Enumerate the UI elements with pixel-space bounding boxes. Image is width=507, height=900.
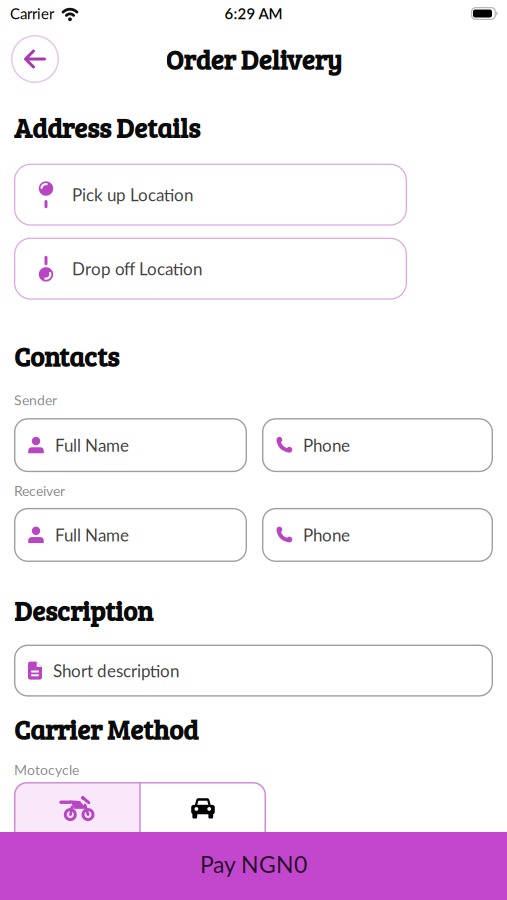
staticText: Phone xyxy=(303,435,350,455)
staticText: Full Name xyxy=(55,525,129,545)
button[interactable]: Drop off Location xyxy=(14,238,407,300)
staticText: Carrier xyxy=(10,4,54,22)
staticText: Address Details xyxy=(14,109,200,146)
staticText: Sender xyxy=(14,391,57,408)
staticText: Drop off Location xyxy=(72,258,202,279)
button[interactable]: Full Name xyxy=(14,508,247,562)
button[interactable]: Car xyxy=(140,782,266,844)
staticText: Pick up Location xyxy=(72,184,193,205)
staticText: Short description xyxy=(53,660,179,681)
staticText: Carrier Method xyxy=(14,711,198,747)
button[interactable]: Phone xyxy=(262,508,493,562)
staticText: Receiver xyxy=(14,482,65,499)
staticText: Phone xyxy=(303,525,350,545)
button[interactable]: Phone xyxy=(262,418,493,472)
staticText: 6:29 AM xyxy=(224,4,282,22)
staticText: Full Name xyxy=(55,435,129,455)
staticText: Description xyxy=(14,592,153,629)
button[interactable]: Short description xyxy=(14,645,493,697)
button[interactable]: Full Name xyxy=(14,418,247,472)
staticText: Pay NGN0 xyxy=(200,850,307,878)
staticText: Order Delivery xyxy=(165,41,341,77)
staticText: Contacts xyxy=(14,338,119,374)
button[interactable]: Back xyxy=(11,35,59,83)
button[interactable]: Motorcycle xyxy=(14,782,140,844)
button[interactable]: Pick up Location xyxy=(14,164,407,226)
staticText: Motocycle xyxy=(14,761,79,778)
button[interactable]: Pay NGN0 xyxy=(0,832,507,900)
